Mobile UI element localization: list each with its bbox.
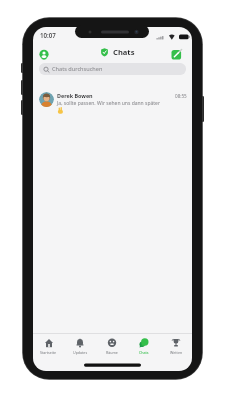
staticText: Startseite — [40, 350, 57, 355]
button[interactable]: Updates — [64, 334, 96, 357]
button[interactable]: Chats durchsuchen — [39, 63, 186, 75]
staticText: Wetten — [170, 350, 183, 355]
button[interactable] — [169, 47, 184, 62]
button[interactable]: Wetten — [160, 334, 192, 357]
staticText: Derek Bowen — [57, 92, 93, 99]
staticText: Chats — [113, 47, 135, 57]
staticText: Ja, sollte passen. Wir sehen uns dann sp… — [57, 100, 160, 107]
staticText: Chats — [139, 350, 149, 355]
staticText: 10:07 — [40, 31, 56, 39]
staticText: Räume — [106, 350, 118, 355]
staticText: Chats durchsuchen — [52, 65, 103, 73]
button[interactable]: Räume — [96, 334, 128, 357]
staticText: Updates — [73, 350, 88, 355]
button[interactable]: Chats — [128, 334, 160, 357]
button[interactable]: Startseite — [33, 334, 64, 357]
button[interactable] — [38, 48, 50, 60]
staticText: 08:55 — [175, 93, 187, 99]
button[interactable]: Derek Bowen — [33, 86, 192, 118]
